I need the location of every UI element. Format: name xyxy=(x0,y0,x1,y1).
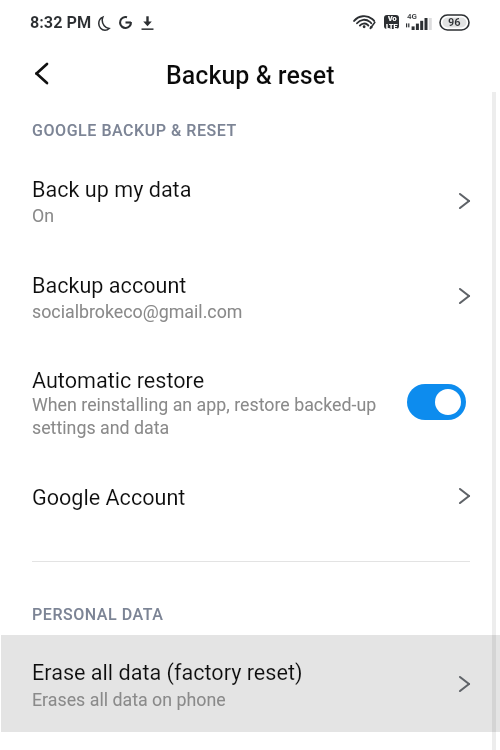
staticText: GOOGLE BACKUP & RESET xyxy=(32,121,237,140)
staticText: Google Account xyxy=(32,485,186,510)
button[interactable]: Open xyxy=(442,179,486,223)
button[interactable] xyxy=(1,635,500,732)
staticText: Back up my data xyxy=(32,177,192,202)
button[interactable]: Open xyxy=(442,662,486,706)
staticText: Backup account xyxy=(32,273,187,298)
staticText: When reinstalling an app, restore backed… xyxy=(32,394,377,438)
staticText: 96 xyxy=(448,16,461,29)
staticText: PERSONAL DATA xyxy=(32,605,164,624)
button[interactable]: Automatic restore toggle xyxy=(407,384,466,420)
staticText: 8:32 PM xyxy=(30,13,92,32)
staticText: On xyxy=(32,205,55,226)
staticText: Erase all data (factory reset) xyxy=(32,660,303,685)
staticText: LTE xyxy=(386,23,398,29)
button[interactable]: Open xyxy=(442,274,486,318)
staticText: Automatic restore xyxy=(32,368,205,393)
button[interactable]: Open xyxy=(442,474,486,518)
staticText: Erases all data on phone xyxy=(32,689,226,710)
staticText: 4G xyxy=(407,12,418,21)
staticText: socialbrokeco@gmail.com xyxy=(32,301,243,322)
staticText: Vo xyxy=(388,15,397,23)
button[interactable]: Back xyxy=(20,52,62,94)
staticText: Backup & reset xyxy=(166,61,335,90)
